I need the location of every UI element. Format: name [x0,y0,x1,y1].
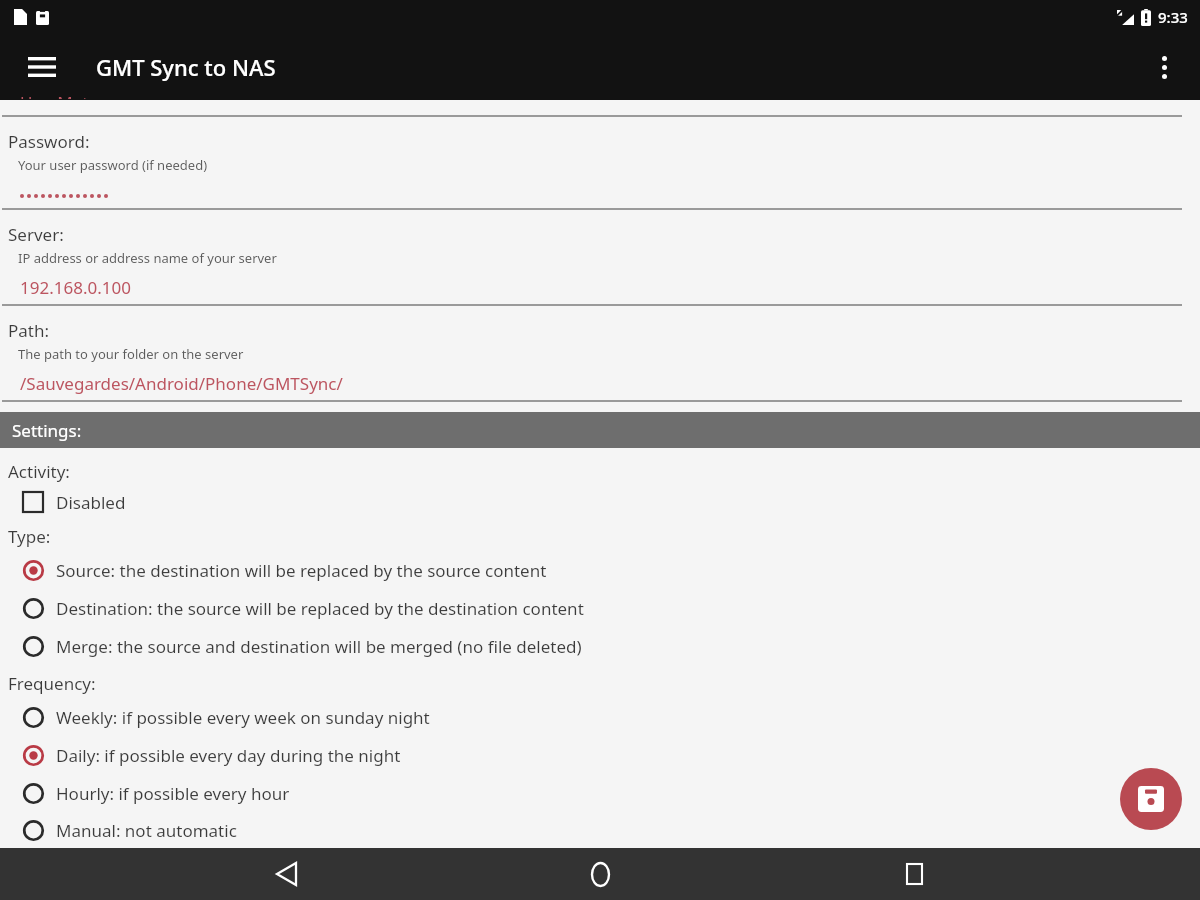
button[interactable]: Manual: not automatic [0,812,1200,848]
staticText: 192.168.0.100 [20,276,131,299]
button[interactable]: Path: [0,306,1200,402]
button[interactable]: Merge: the source and destination will b… [0,627,1200,665]
staticText: Disabled [56,491,126,514]
staticText: Activity: [8,460,70,483]
staticText: Settings: [12,419,82,442]
staticText: Password: [8,130,90,153]
staticText: Server: [8,223,64,246]
button[interactable]: Settings: [0,412,1200,448]
staticText: IP address or address name of your serve… [18,249,277,267]
button[interactable]: Save [1120,768,1182,830]
staticText: /Sauvegardes/Android/Phone/GMTSync/ [20,372,343,395]
button[interactable]: Back [258,848,314,900]
staticText: Your user password (if needed) [18,156,208,174]
button[interactable]: Disabled [0,483,1200,521]
staticText: Manual: not automatic [56,819,237,842]
button[interactable]: More options [1138,41,1190,93]
button[interactable]: Password: [0,117,1200,210]
button[interactable]: Destination: the source will be replaced… [0,589,1200,627]
button[interactable]: Hourly: if possible every hour [0,774,1200,812]
staticText: Source: the destination will be replaced… [56,559,547,582]
staticText: The path to your folder on the server [18,345,244,363]
staticText: Path: [8,319,50,342]
staticText: Type: [8,525,51,548]
staticText: GMT Sync to NAS [96,52,276,82]
button[interactable]: Weekly: if possible every week on sunday… [0,698,1200,736]
staticText: Frequency: [8,672,96,695]
button[interactable]: Server: [0,210,1200,306]
staticText: 9:33 [1158,7,1188,27]
staticText: Destination: the source will be replaced… [56,597,584,620]
button[interactable]: Home [572,848,628,900]
button[interactable]: Recent apps [886,848,942,900]
staticText: Daily: if possible every day during the … [56,744,401,767]
staticText: Merge: the source and destination will b… [56,635,582,658]
staticText: UserMat [20,91,89,99]
button[interactable]: Open navigation drawer [14,39,70,95]
button[interactable]: Daily: if possible every day during the … [0,736,1200,774]
staticText: Hourly: if possible every hour [56,782,290,805]
button[interactable]: Source: the destination will be replaced… [0,551,1200,589]
staticText: Weekly: if possible every week on sunday… [56,706,430,729]
